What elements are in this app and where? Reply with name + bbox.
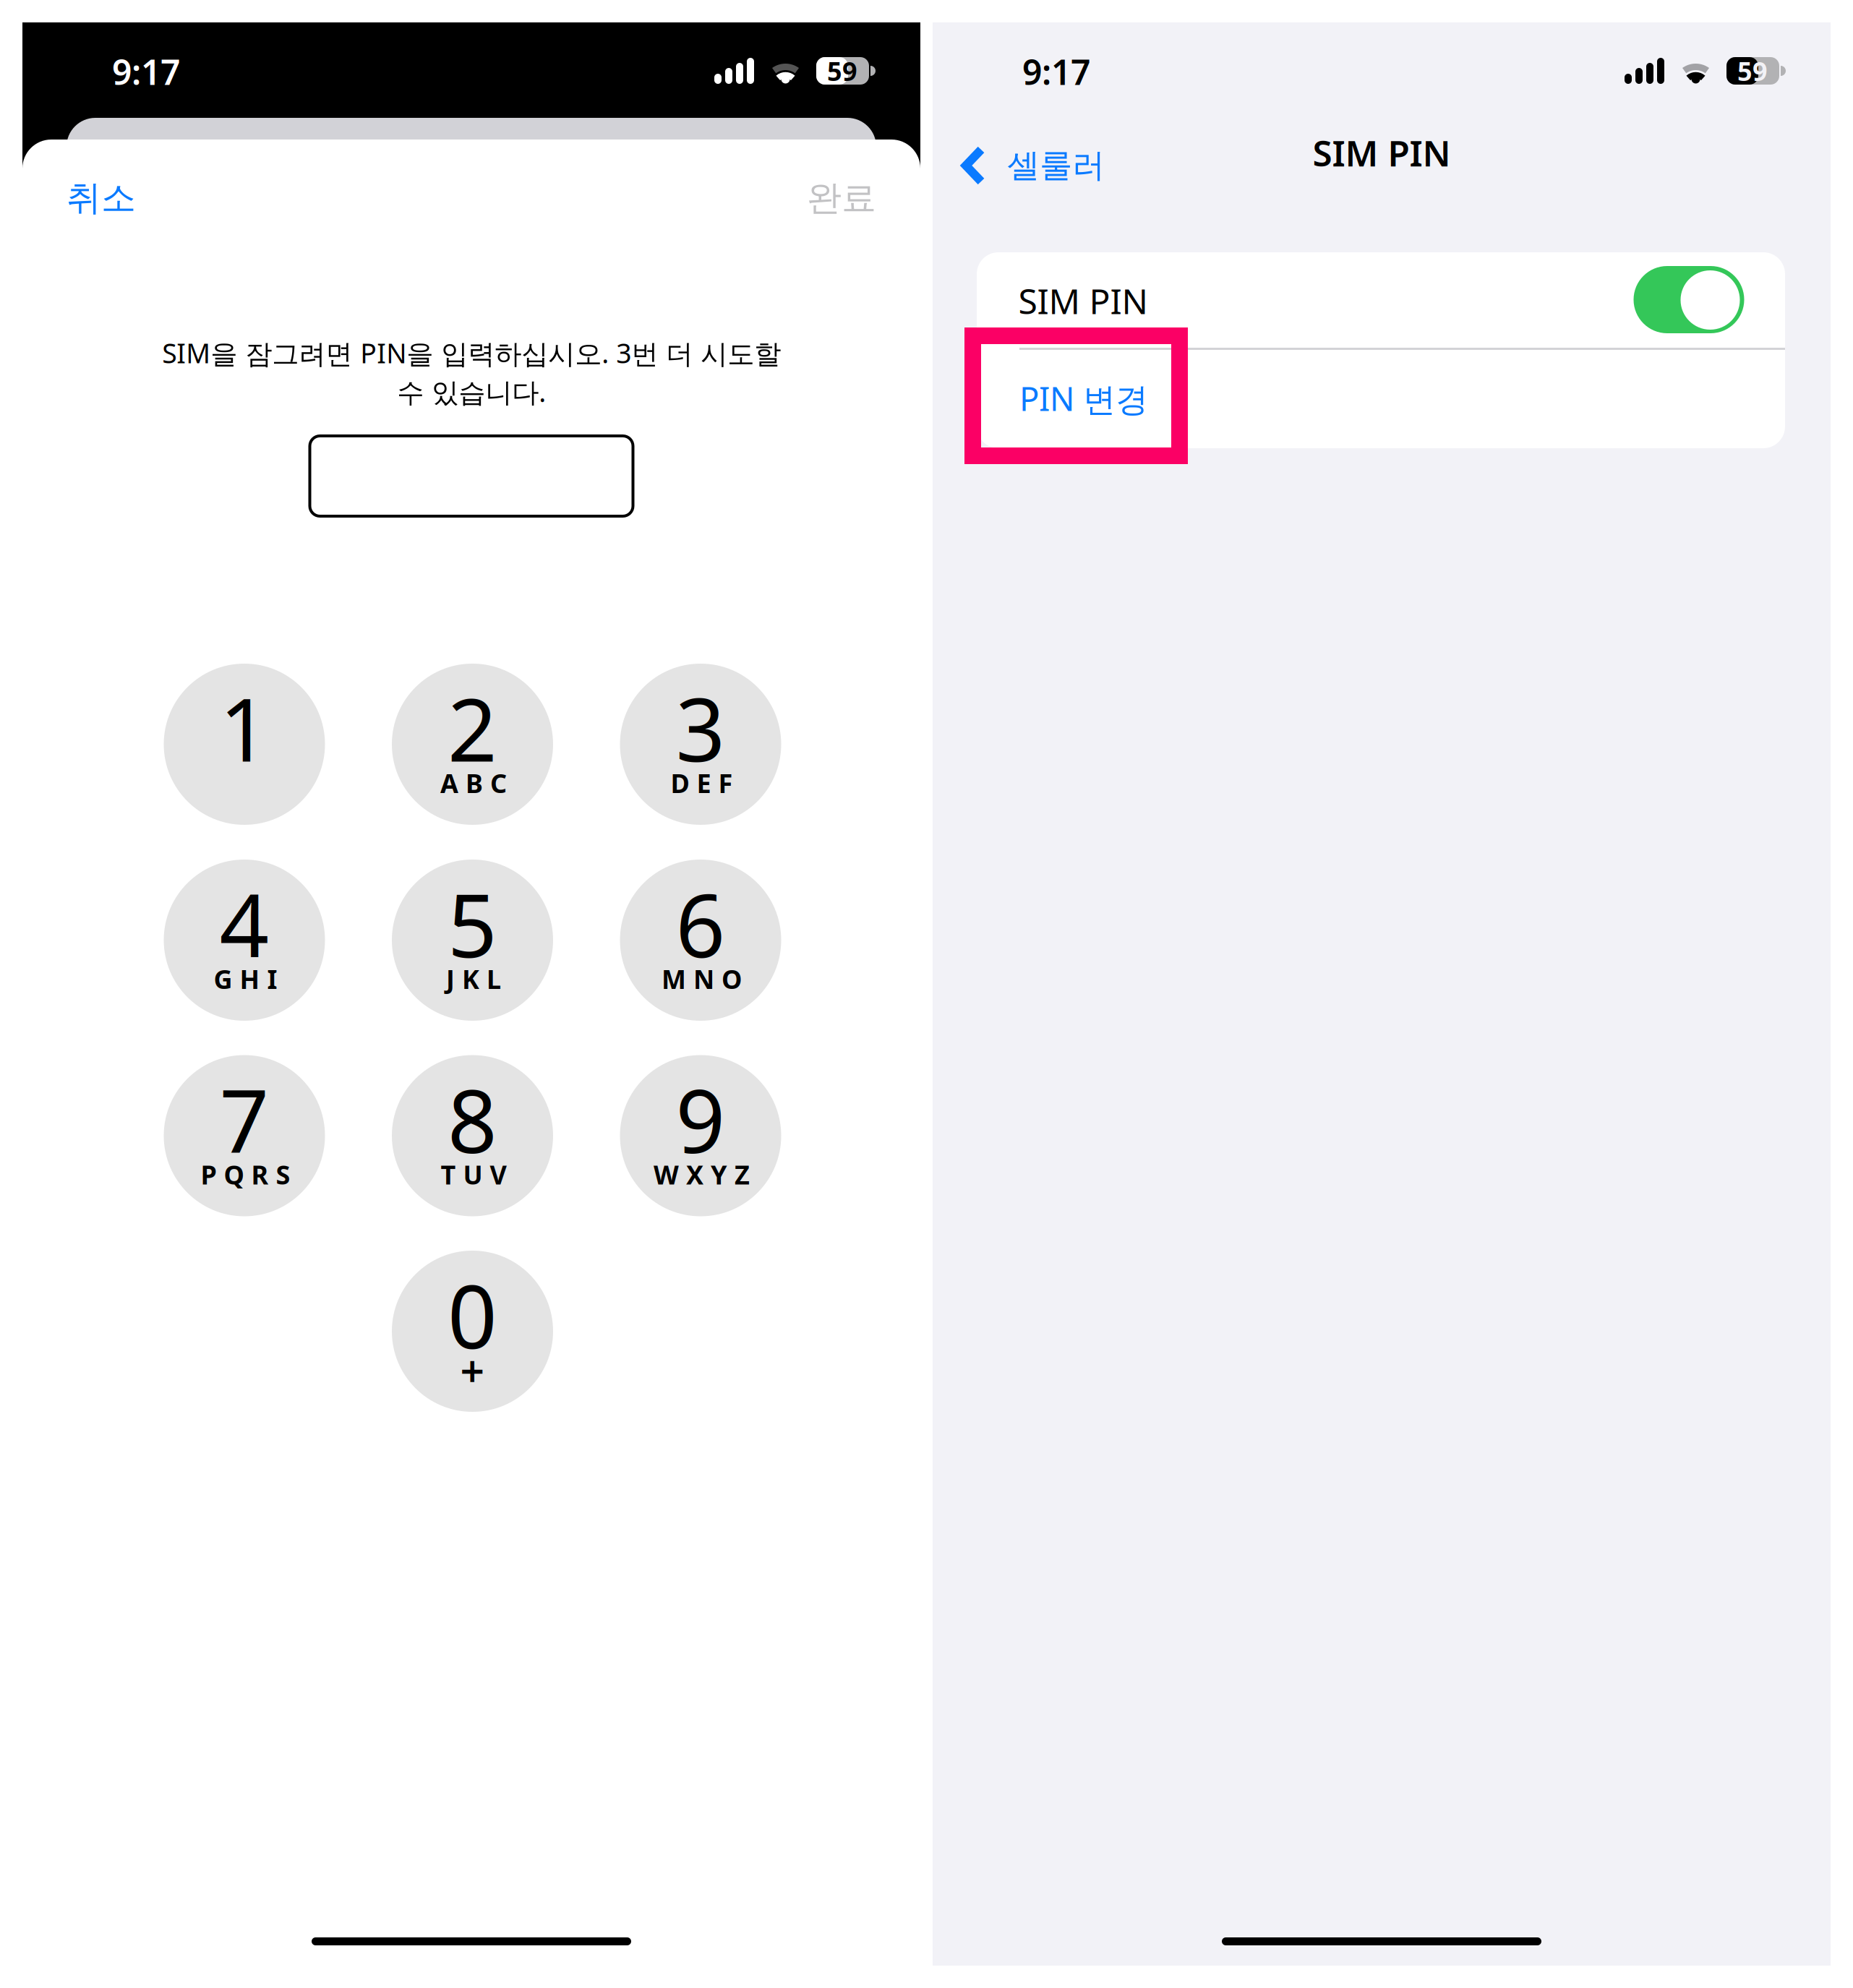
staticText: DEF bbox=[671, 766, 733, 800]
button[interactable]: 1 bbox=[164, 664, 325, 825]
staticText: SIM PIN bbox=[1313, 129, 1451, 176]
staticText: MNO bbox=[662, 962, 742, 996]
staticText: PQRS bbox=[201, 1157, 290, 1192]
staticText: WXYZ bbox=[654, 1157, 750, 1192]
staticText: 59 bbox=[827, 54, 857, 88]
staticText: 3 bbox=[676, 670, 726, 786]
staticText: 7 bbox=[219, 1062, 269, 1177]
staticText: GHI bbox=[214, 962, 277, 996]
button[interactable]: 6 bbox=[620, 860, 781, 1021]
staticText: 9:17 bbox=[1022, 49, 1090, 95]
staticText: 8 bbox=[448, 1062, 497, 1177]
button[interactable]: 8 bbox=[392, 1055, 553, 1216]
staticText: SIM을 잠그려면 PIN을 입력하십시오. 3번 더 시도할 수 있습니다. bbox=[162, 335, 781, 410]
button[interactable]: 4 bbox=[164, 860, 325, 1021]
staticText: + bbox=[460, 1342, 485, 1399]
button[interactable]: 9 bbox=[620, 1055, 781, 1216]
button[interactable]: PIN 변경 bbox=[1019, 348, 1785, 448]
staticText: ABC bbox=[440, 766, 507, 800]
button[interactable]: 취소 bbox=[22, 156, 204, 240]
button[interactable]: 셀룰러 bbox=[933, 126, 1128, 205]
staticText: SIM PIN bbox=[1018, 278, 1148, 324]
staticText: 9:17 bbox=[112, 49, 180, 95]
staticText: 9 bbox=[676, 1062, 726, 1177]
staticText: 0 bbox=[448, 1257, 497, 1373]
staticText: PIN 변경 bbox=[1019, 376, 1148, 420]
button[interactable]: 7 bbox=[164, 1055, 325, 1216]
button[interactable]: 3 bbox=[620, 664, 781, 825]
staticText: 59 bbox=[1737, 54, 1768, 88]
button[interactable]: 완료 bbox=[739, 156, 920, 240]
staticText: 완료 bbox=[807, 177, 876, 219]
staticText: 5 bbox=[448, 866, 497, 981]
staticText: 2 bbox=[448, 670, 497, 786]
staticText: JKL bbox=[446, 962, 501, 996]
staticText: 셀룰러 bbox=[1007, 145, 1105, 186]
button[interactable]: 5 bbox=[392, 860, 553, 1021]
staticText: 취소 bbox=[67, 177, 136, 219]
button[interactable]: 0 bbox=[392, 1251, 553, 1412]
staticText: 4 bbox=[219, 866, 269, 981]
button[interactable]: SIM PIN, on bbox=[1634, 266, 1744, 333]
button[interactable]: 2 bbox=[392, 664, 553, 825]
staticText: 6 bbox=[676, 866, 726, 981]
staticText: TUV bbox=[441, 1157, 506, 1192]
staticText: 1 bbox=[219, 670, 269, 786]
